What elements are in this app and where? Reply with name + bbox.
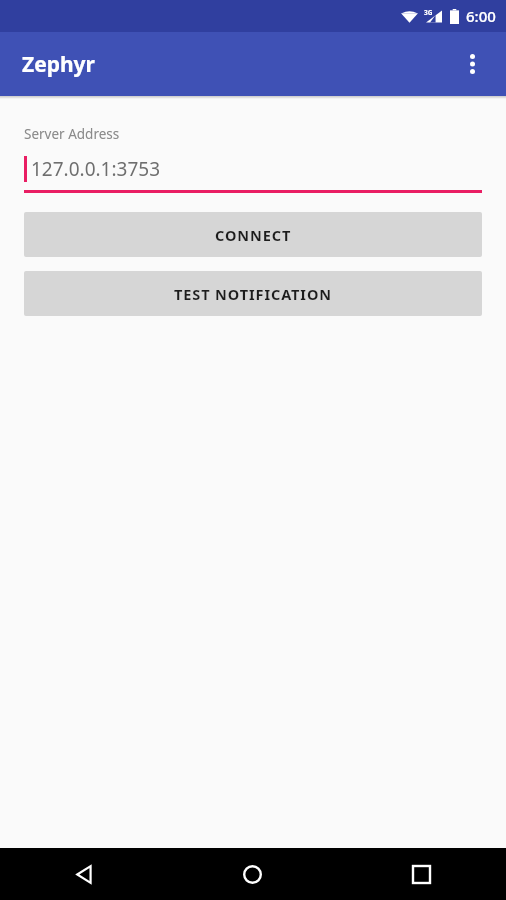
staticText: 6:00	[466, 6, 496, 26]
button[interactable]: 127.0.0.1:3753	[24, 156, 482, 190]
button[interactable]: Home	[168, 848, 337, 900]
button[interactable]: CONNECT	[24, 212, 482, 257]
button[interactable]: Back	[0, 848, 168, 900]
staticText: Zephyr	[22, 50, 95, 79]
staticText: TEST NOTIFICATION	[174, 284, 332, 304]
button[interactable]: More options	[448, 40, 496, 88]
staticText: Server Address	[24, 125, 120, 143]
button[interactable]: Recent apps	[337, 848, 506, 900]
staticText: CONNECT	[215, 225, 292, 245]
staticText: 127.0.0.1:3753	[31, 156, 161, 182]
staticText: 3G	[424, 8, 433, 17]
button[interactable]: TEST NOTIFICATION	[24, 271, 482, 316]
